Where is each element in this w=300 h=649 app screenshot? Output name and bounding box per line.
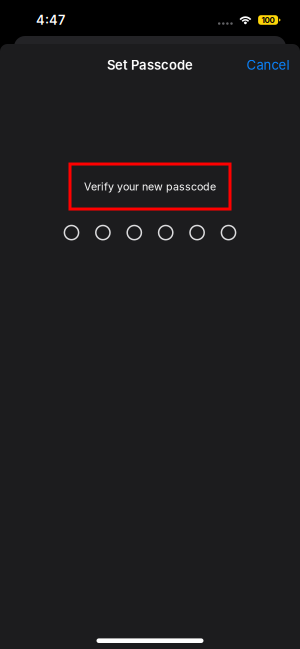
- staticText: Set Passcode: [107, 57, 193, 73]
- staticText: Verify your new passcode: [84, 180, 216, 193]
- staticText: 100: [262, 15, 275, 25]
- button[interactable]: Cancel: [236, 50, 299, 80]
- button[interactable]: Passcode field, 0 of 6 digits entered: [54, 220, 246, 245]
- staticText: 4:47: [36, 12, 65, 28]
- staticText: Cancel: [246, 57, 289, 73]
